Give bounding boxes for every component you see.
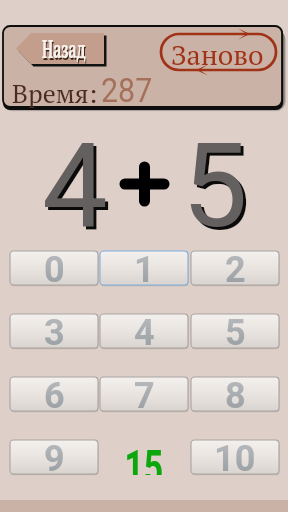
button[interactable]: 7 — [99, 376, 189, 412]
staticText: 7 — [134, 375, 155, 411]
staticText: Назад — [43, 33, 87, 67]
staticText: Время: — [12, 76, 98, 110]
staticText: 5 — [225, 312, 246, 348]
staticText: 2 — [225, 249, 246, 285]
button[interactable]: Заново — [152, 24, 286, 80]
button[interactable]: 15 — [99, 439, 189, 475]
staticText: 6 — [44, 375, 65, 411]
staticText: 0 — [44, 249, 65, 285]
staticText: 5 — [182, 117, 248, 254]
staticText: 5 — [185, 120, 251, 257]
button[interactable] — [16, 33, 104, 64]
button[interactable]: 5 — [190, 313, 280, 349]
button[interactable]: 0 — [9, 250, 99, 286]
staticText: 4 — [45, 120, 111, 257]
staticText: 4 — [134, 312, 155, 348]
staticText: Назад — [42, 31, 86, 65]
button[interactable]: 1 — [99, 250, 189, 286]
staticText: 4 — [42, 117, 108, 254]
staticText: 9 — [44, 438, 65, 474]
staticText: 8 — [225, 375, 246, 411]
staticText: 3 — [44, 312, 65, 348]
button[interactable]: 3 — [9, 313, 99, 349]
button[interactable]: 4 — [99, 313, 189, 349]
staticText: 15 — [124, 439, 164, 475]
button[interactable]: 6 — [9, 376, 99, 412]
button[interactable]: 9 — [9, 439, 99, 475]
button[interactable]: 2 — [190, 250, 280, 286]
staticText: 1 — [134, 249, 155, 285]
button[interactable]: 10 — [190, 439, 280, 475]
staticText: Заново — [171, 36, 264, 73]
staticText: 10 — [214, 438, 256, 474]
button[interactable]: 8 — [190, 376, 280, 412]
staticText: 287 — [101, 71, 152, 110]
